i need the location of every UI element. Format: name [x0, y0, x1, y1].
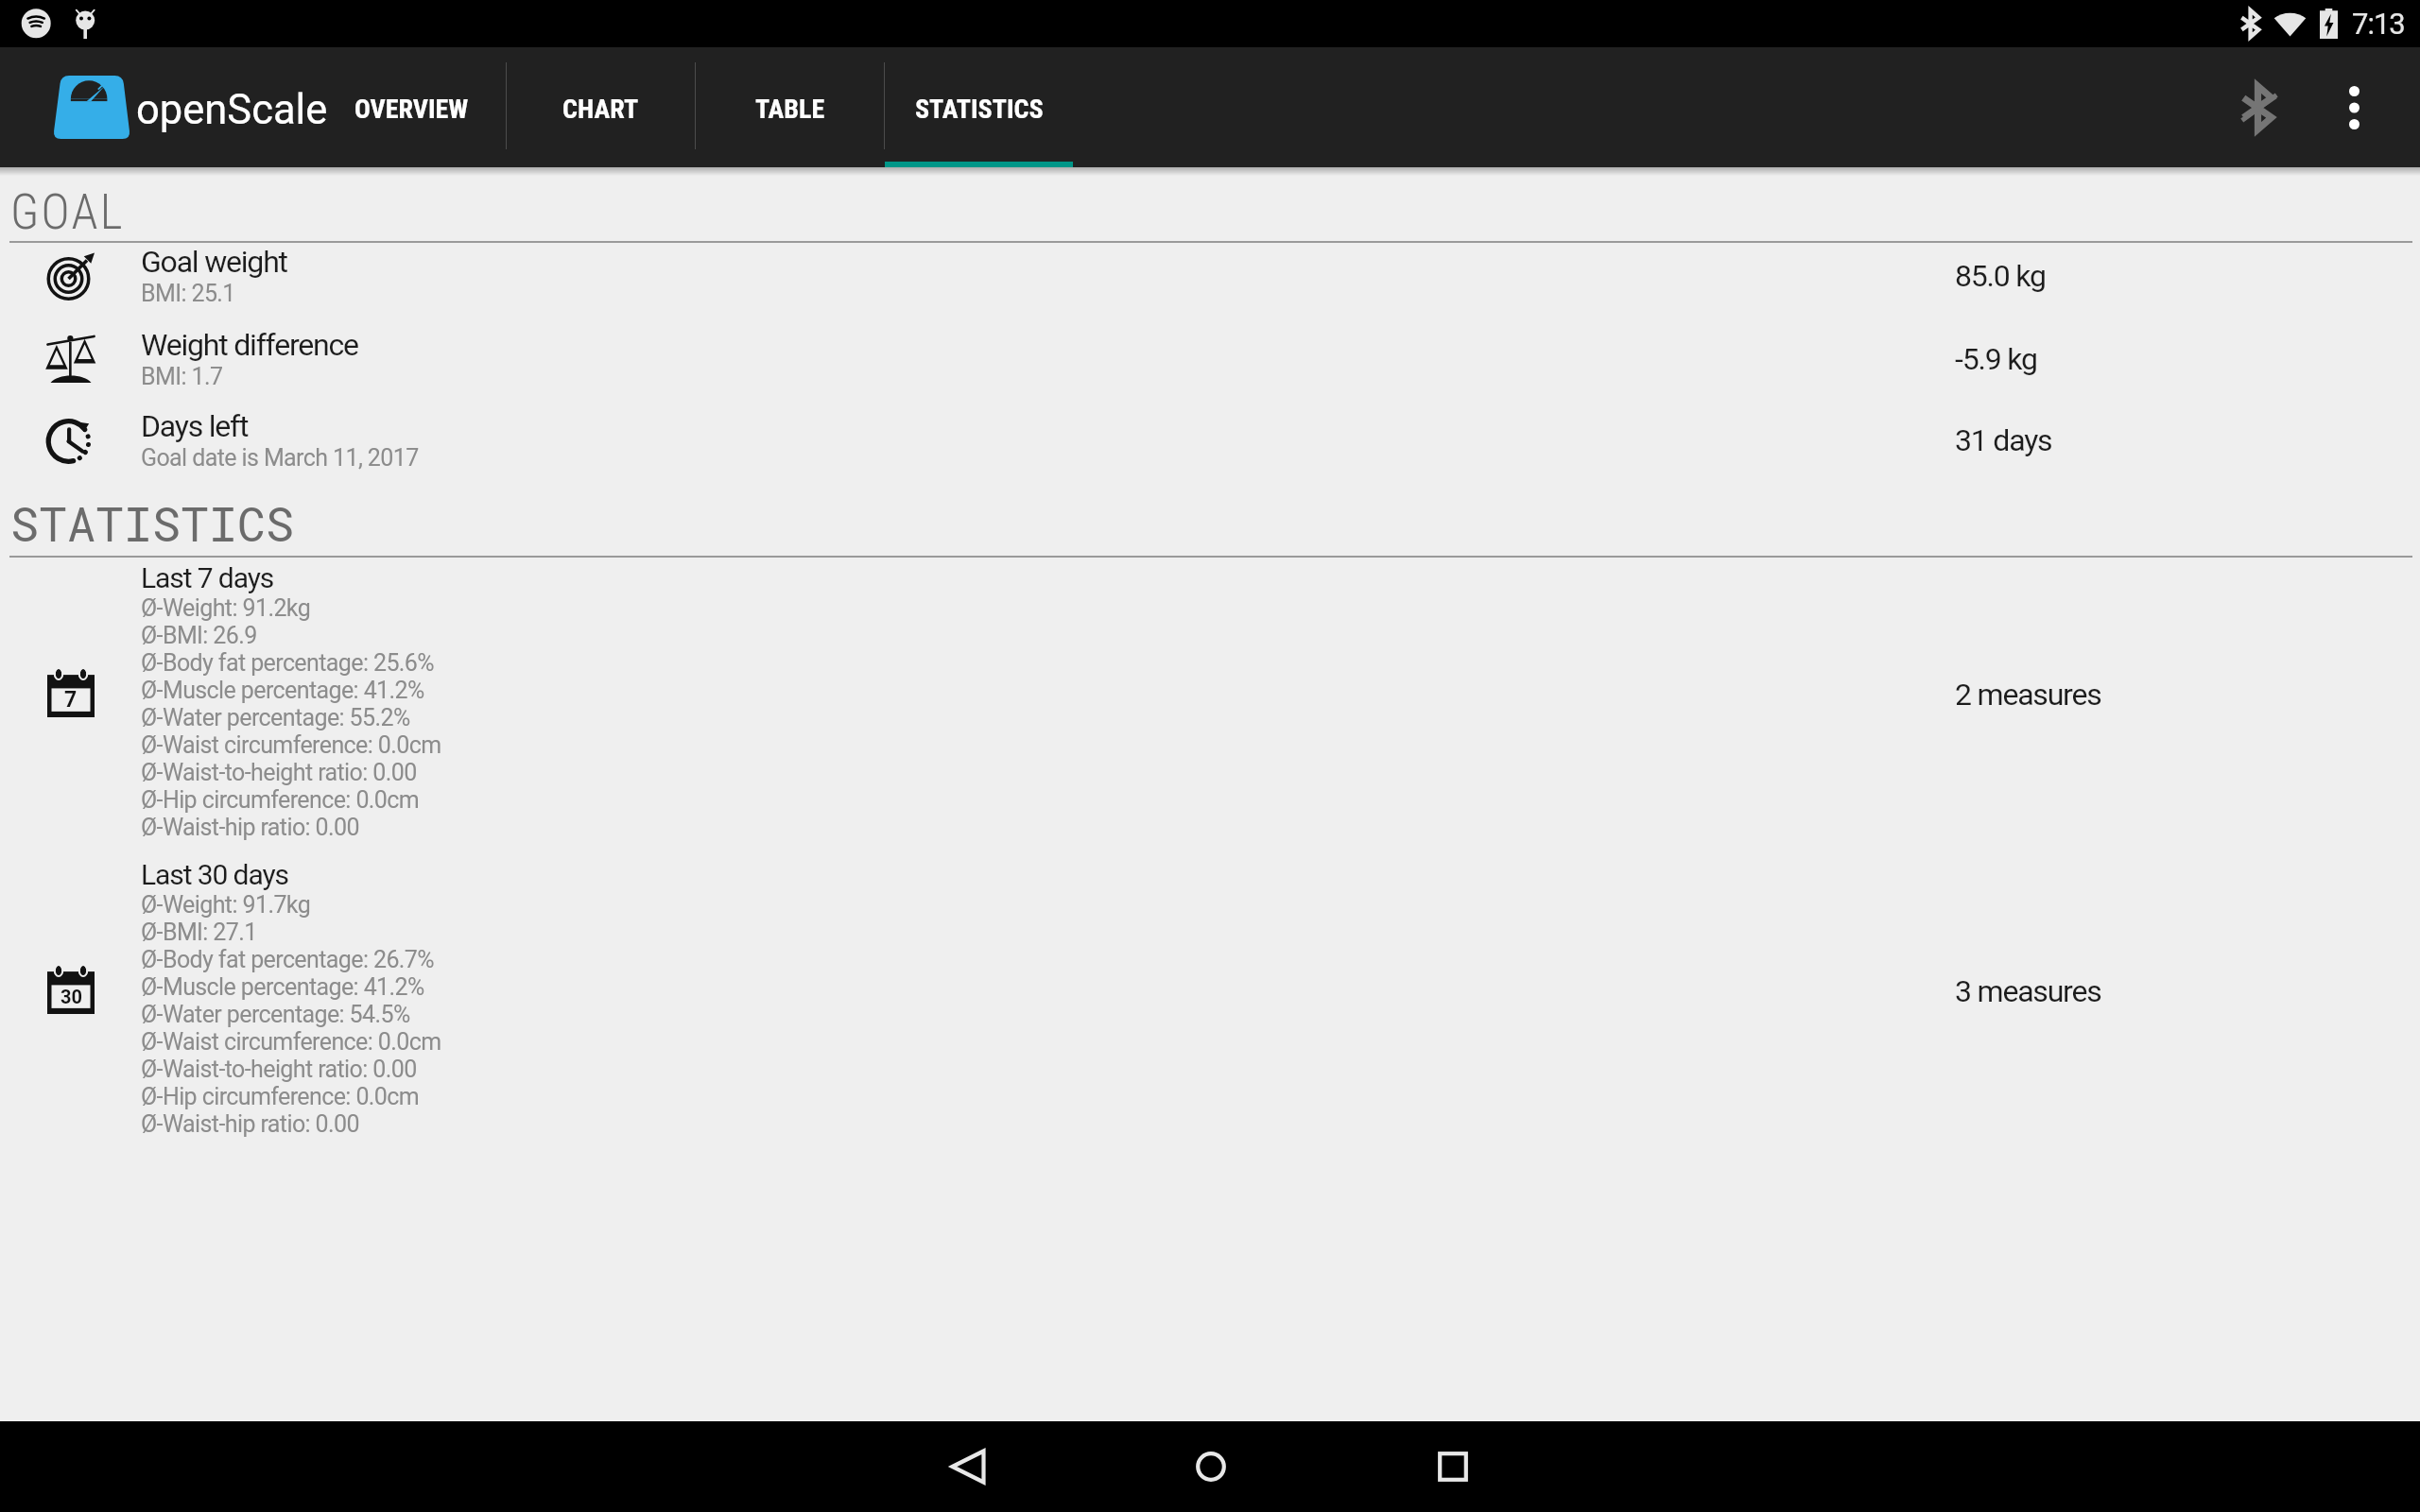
staticText: 85.0 kg — [1955, 258, 2046, 294]
staticText: Last 30 days — [141, 858, 288, 891]
staticText: Ø-Weight: 91.7kg — [141, 891, 311, 919]
button[interactable]: More options — [2307, 47, 2401, 167]
staticText: Ø-BMI: 26.9 — [141, 622, 257, 649]
staticText: Goal date is March 11, 2017 — [141, 444, 419, 472]
staticText: Ø-Water percentage: 55.2% — [141, 704, 410, 731]
staticText: 7 — [64, 687, 78, 713]
staticText: BMI: 25.1 — [141, 280, 235, 307]
staticText: TABLE — [755, 94, 825, 125]
button[interactable]: 30 — [0, 857, 2420, 1138]
button[interactable]: Days left — [0, 399, 2420, 481]
button[interactable]: Back — [911, 1421, 1025, 1512]
button[interactable]: STATISTICS — [885, 47, 1073, 167]
staticText: Ø-Muscle percentage: 41.2% — [141, 677, 424, 704]
staticText: 7:13 — [2352, 7, 2405, 41]
button[interactable]: OVERVIEW — [318, 47, 506, 167]
staticText: Ø-Hip circumference: 0.0cm — [141, 786, 420, 814]
button[interactable]: 7 — [0, 560, 2420, 841]
staticText: openScale — [136, 86, 328, 134]
staticText: Weight difference — [141, 327, 358, 363]
button[interactable]: Weight difference — [0, 318, 2420, 400]
staticText: Ø-Waist-hip ratio: 0.00 — [141, 1110, 359, 1138]
staticText: STATISTICS — [915, 94, 1044, 125]
staticText: 30 — [60, 986, 82, 1007]
staticText: OVERVIEW — [354, 94, 469, 125]
button[interactable]: Bluetooth disabled — [2212, 47, 2307, 167]
staticText: Ø-Body fat percentage: 25.6% — [141, 649, 435, 677]
staticText: -5.9 kg — [1955, 341, 2037, 377]
staticText: Ø-Water percentage: 54.5% — [141, 1001, 410, 1028]
staticText: Ø-Waist circumference: 0.0cm — [141, 1028, 441, 1056]
staticText: Ø-Weight: 91.2kg — [141, 594, 311, 622]
staticText: Goal weight — [141, 244, 287, 280]
staticText: Ø-Hip circumference: 0.0cm — [141, 1083, 420, 1110]
staticText: Ø-Muscle percentage: 41.2% — [141, 973, 424, 1001]
staticText: STATISTICS — [10, 492, 295, 555]
button[interactable]: Goal weight — [0, 234, 2420, 317]
staticText: Ø-Waist circumference: 0.0cm — [141, 731, 441, 759]
staticText: 3 measures — [1955, 973, 2101, 1009]
staticText: 31 days — [1955, 422, 2052, 458]
staticText: Ø-Waist-to-height ratio: 0.00 — [141, 759, 417, 786]
staticText: Ø-BMI: 27.1 — [141, 919, 257, 946]
staticText: 2 measures — [1955, 677, 2101, 713]
staticText: BMI: 1.7 — [141, 363, 223, 390]
button[interactable]: TABLE — [696, 47, 884, 167]
staticText: Ø-Waist-hip ratio: 0.00 — [141, 814, 359, 841]
staticText: GOAL — [10, 184, 125, 241]
staticText: Last 7 days — [141, 561, 274, 594]
staticText: CHART — [562, 94, 639, 125]
button[interactable]: CHART — [507, 47, 695, 167]
staticText: Days left — [141, 408, 249, 444]
button[interactable]: Home — [1154, 1421, 1268, 1512]
button[interactable]: Recent apps — [1396, 1421, 1510, 1512]
staticText: Ø-Body fat percentage: 26.7% — [141, 946, 435, 973]
staticText: Ø-Waist-to-height ratio: 0.00 — [141, 1056, 417, 1083]
